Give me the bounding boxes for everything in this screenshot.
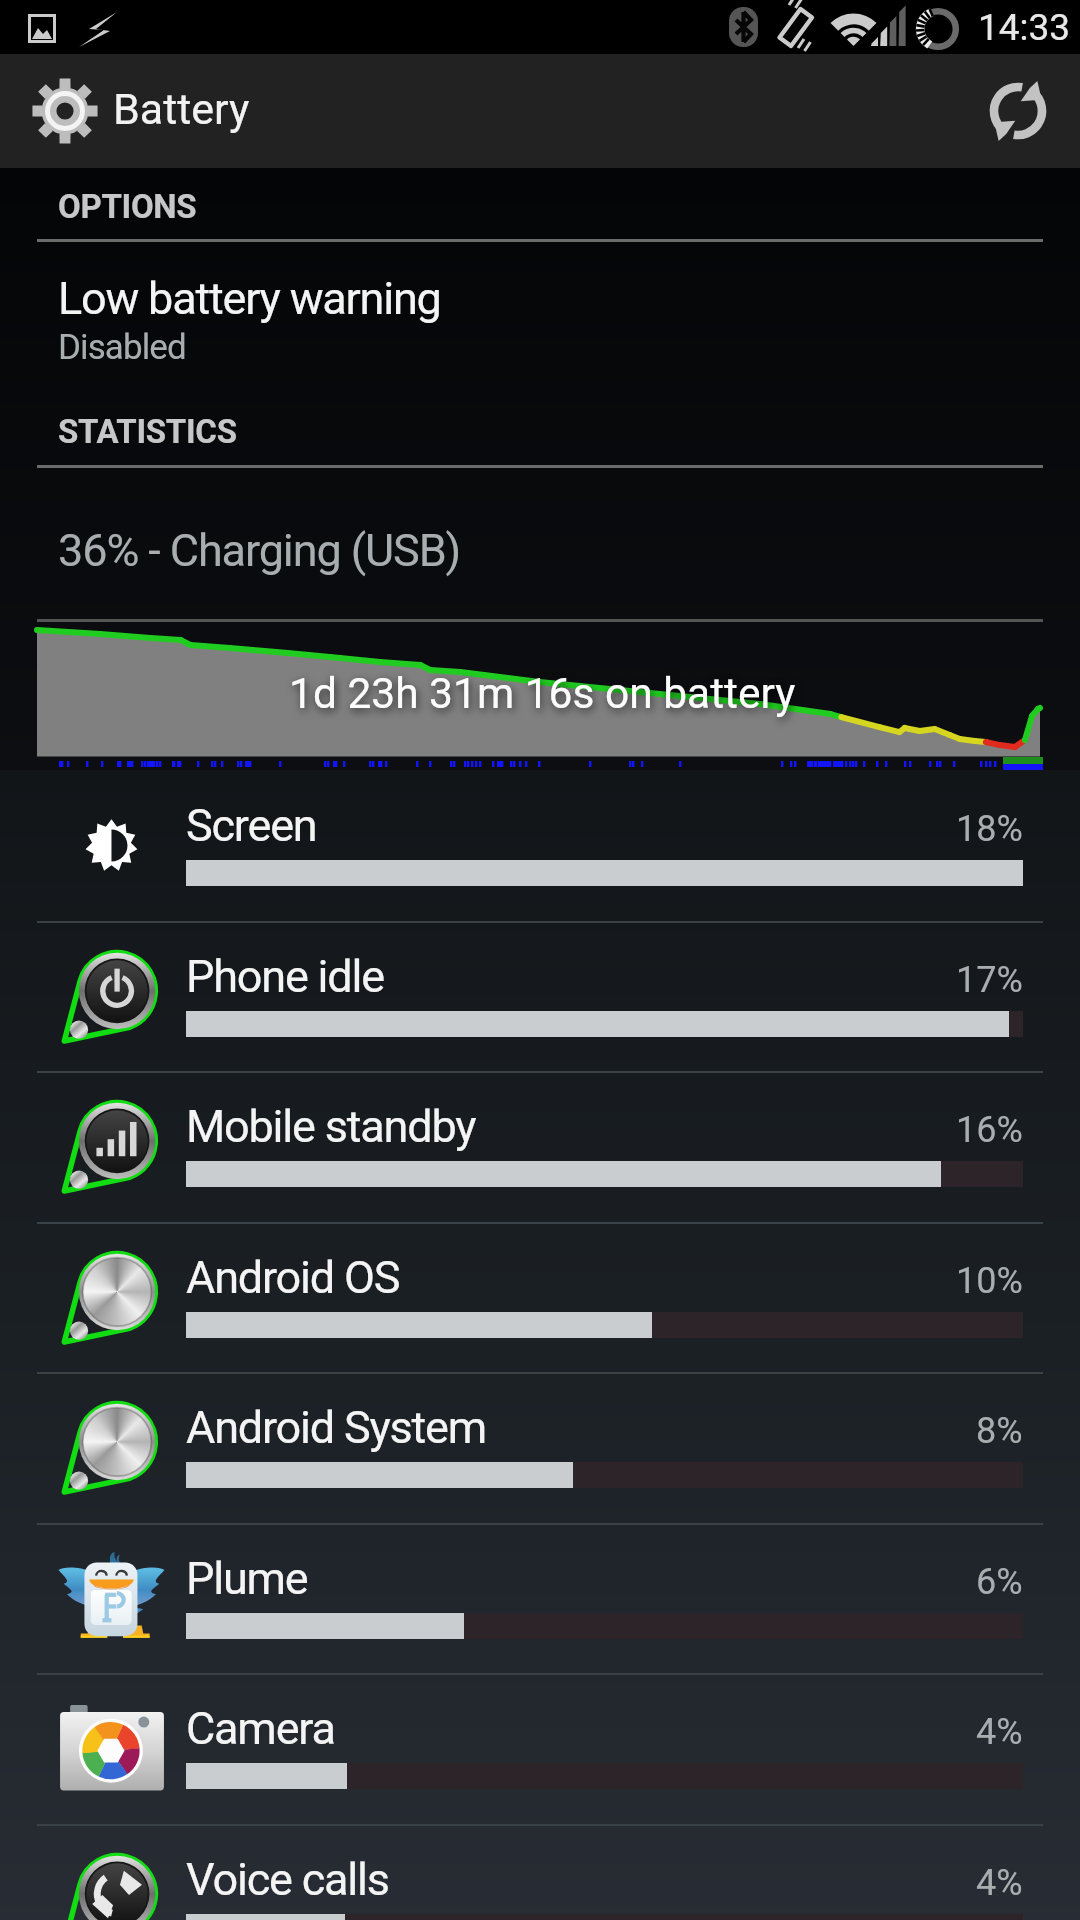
staticText: Android OS bbox=[186, 1251, 400, 1304]
staticText: Mobile standby bbox=[186, 1100, 476, 1153]
staticText: Voice calls bbox=[186, 1853, 389, 1906]
staticText: 4% bbox=[976, 1711, 1023, 1753]
staticText: 4% bbox=[976, 1862, 1023, 1904]
staticText: 16% bbox=[956, 1109, 1023, 1151]
staticText: Disabled bbox=[58, 327, 186, 368]
staticText: Battery bbox=[113, 84, 250, 134]
staticText: 17% bbox=[956, 959, 1023, 1001]
staticText: 10% bbox=[956, 1260, 1023, 1302]
button[interactable]: Android OS bbox=[0, 1222, 1080, 1373]
staticText: 8% bbox=[976, 1410, 1023, 1452]
staticText: 6% bbox=[976, 1561, 1023, 1603]
staticText: Camera bbox=[186, 1702, 335, 1755]
staticText: Android System bbox=[186, 1401, 487, 1454]
button[interactable]: Voice calls bbox=[0, 1824, 1080, 1920]
staticText: 14:33 bbox=[978, 6, 1071, 49]
button[interactable]: Phone idle bbox=[0, 921, 1080, 1072]
staticText: 36% - Charging (USB) bbox=[58, 524, 461, 577]
staticText: Phone idle bbox=[186, 950, 384, 1003]
staticText: Plume bbox=[186, 1552, 308, 1605]
button[interactable]: Mobile standby bbox=[0, 1071, 1080, 1222]
staticText: 18% bbox=[956, 808, 1023, 850]
staticText: STATISTICS bbox=[58, 412, 237, 451]
button[interactable]: Low battery warning bbox=[0, 250, 1080, 385]
button[interactable]: Refresh bbox=[966, 54, 1080, 168]
button[interactable]: Plume bbox=[0, 1523, 1080, 1674]
button[interactable]: Camera bbox=[0, 1673, 1080, 1824]
staticText: Screen bbox=[186, 799, 317, 852]
staticText: OPTIONS bbox=[58, 187, 197, 226]
button[interactable]: Android System bbox=[0, 1372, 1080, 1523]
staticText: Low battery warning bbox=[58, 272, 441, 325]
button[interactable]: Screen bbox=[0, 770, 1080, 921]
staticText: 1d 23h 31m 16s on battery bbox=[289, 669, 796, 719]
